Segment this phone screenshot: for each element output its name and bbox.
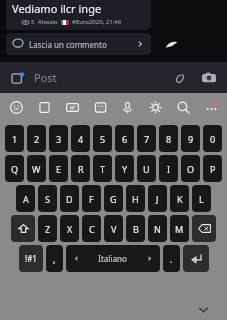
- staticText: Q: [11, 163, 19, 175]
- button[interactable]: 8: [159, 125, 178, 152]
- staticText: Lascia un commento: [29, 39, 107, 50]
- button[interactable]: W: [27, 155, 46, 182]
- button[interactable]: T: [93, 155, 112, 182]
- button[interactable]: 2: [27, 125, 46, 152]
- staticText: K: [177, 193, 183, 205]
- button[interactable]: 6: [115, 125, 134, 152]
- button[interactable]: Settings: [143, 95, 167, 119]
- button[interactable]: C: [82, 215, 101, 242]
- staticText: 9: [188, 133, 194, 145]
- button[interactable]: Q: [5, 155, 24, 182]
- button[interactable]: N: [148, 215, 167, 242]
- staticText: I: [167, 163, 171, 175]
- button[interactable]: Hide keyboard: [193, 299, 213, 319]
- staticText: H: [132, 193, 139, 205]
- button[interactable]: [11, 215, 35, 242]
- button[interactable]: H: [126, 185, 145, 212]
- staticText: D: [66, 193, 73, 205]
- button[interactable]: [192, 215, 216, 242]
- button[interactable]: D: [60, 185, 79, 212]
- button[interactable]: L: [192, 185, 211, 212]
- staticText: R: [78, 163, 84, 175]
- staticText: A: [23, 193, 29, 205]
- staticText: ,: [53, 253, 56, 265]
- button[interactable]: 5: [93, 125, 112, 152]
- button[interactable]: Emoji: [4, 95, 28, 119]
- staticText: X: [67, 223, 73, 235]
- button[interactable]: ,: [46, 245, 63, 272]
- button[interactable]: I: [159, 155, 178, 182]
- staticText: Vediamo ilcr inge: [12, 1, 102, 16]
- staticText: C: [89, 223, 95, 235]
- staticText: 5: [100, 133, 106, 145]
- button[interactable]: Lascia un commento: [6, 33, 151, 55]
- button[interactable]: 9: [181, 125, 200, 152]
- button[interactable]: Search: [171, 95, 195, 119]
- staticText: V: [111, 223, 117, 235]
- staticText: J: [156, 193, 159, 205]
- staticText: G: [110, 193, 117, 205]
- staticText: 6: [122, 133, 128, 145]
- button[interactable]: V: [104, 215, 123, 242]
- button[interactable]: Share: [161, 34, 181, 54]
- staticText: F: [89, 193, 94, 205]
- button[interactable]: Camera: [199, 68, 219, 88]
- staticText: N: [154, 223, 161, 235]
- button[interactable]: Z: [38, 215, 57, 242]
- button[interactable]: J: [148, 185, 167, 212]
- button[interactable]: G: [104, 185, 123, 212]
- button[interactable]: Clipboard: [32, 95, 56, 119]
- button[interactable]: X: [60, 215, 79, 242]
- button[interactable]: 0: [203, 125, 222, 152]
- staticText: L: [199, 193, 204, 205]
- button[interactable]: Attach: [169, 68, 189, 88]
- staticText: Y: [122, 163, 128, 175]
- staticText: B: [133, 223, 139, 235]
- button[interactable]: Voice input: [115, 95, 139, 119]
- button[interactable]: 7: [137, 125, 156, 152]
- staticText: 1: [12, 133, 18, 145]
- button[interactable]: 3: [49, 125, 68, 152]
- staticText: Alessio: [38, 18, 58, 26]
- button[interactable]: F: [82, 185, 101, 212]
- staticText: .: [170, 253, 173, 265]
- button[interactable]: Stickers: [8, 69, 26, 87]
- button[interactable]: !#1: [19, 245, 43, 272]
- button[interactable]: 1: [5, 125, 24, 152]
- staticText: !#1: [25, 253, 37, 264]
- button[interactable]: E: [49, 155, 68, 182]
- button[interactable]: A: [16, 185, 35, 212]
- staticText: 0: [210, 133, 216, 145]
- staticText: W: [32, 163, 41, 175]
- button[interactable]: Sticker: [88, 95, 112, 119]
- staticText: 5: [31, 18, 35, 26]
- staticText: O: [187, 163, 195, 175]
- button[interactable]: K: [170, 185, 189, 212]
- button[interactable]: .: [163, 245, 180, 272]
- staticText: T: [100, 163, 106, 175]
- staticText: M: [175, 223, 184, 235]
- button[interactable]: [183, 245, 209, 272]
- button[interactable]: 4: [71, 125, 90, 152]
- staticText: U: [143, 163, 150, 175]
- staticText: S: [45, 193, 50, 205]
- button[interactable]: GIF: [60, 95, 84, 119]
- staticText: P: [210, 163, 216, 175]
- staticText: E: [56, 163, 62, 175]
- staticText: 3: [56, 133, 62, 145]
- button[interactable]: R: [71, 155, 90, 182]
- staticText: Post: [34, 70, 57, 85]
- button[interactable]: U: [137, 155, 156, 182]
- button[interactable]: More: [199, 95, 223, 119]
- staticText: Z: [45, 223, 51, 235]
- staticText: 4: [78, 133, 84, 145]
- button[interactable]: B: [126, 215, 145, 242]
- button[interactable]: Italiano: [66, 245, 160, 272]
- button[interactable]: O: [181, 155, 200, 182]
- button[interactable]: M: [170, 215, 189, 242]
- staticText: 7: [144, 133, 150, 145]
- staticText: 8: [166, 133, 172, 145]
- button[interactable]: Y: [115, 155, 134, 182]
- button[interactable]: P: [203, 155, 222, 182]
- button[interactable]: S: [38, 185, 57, 212]
